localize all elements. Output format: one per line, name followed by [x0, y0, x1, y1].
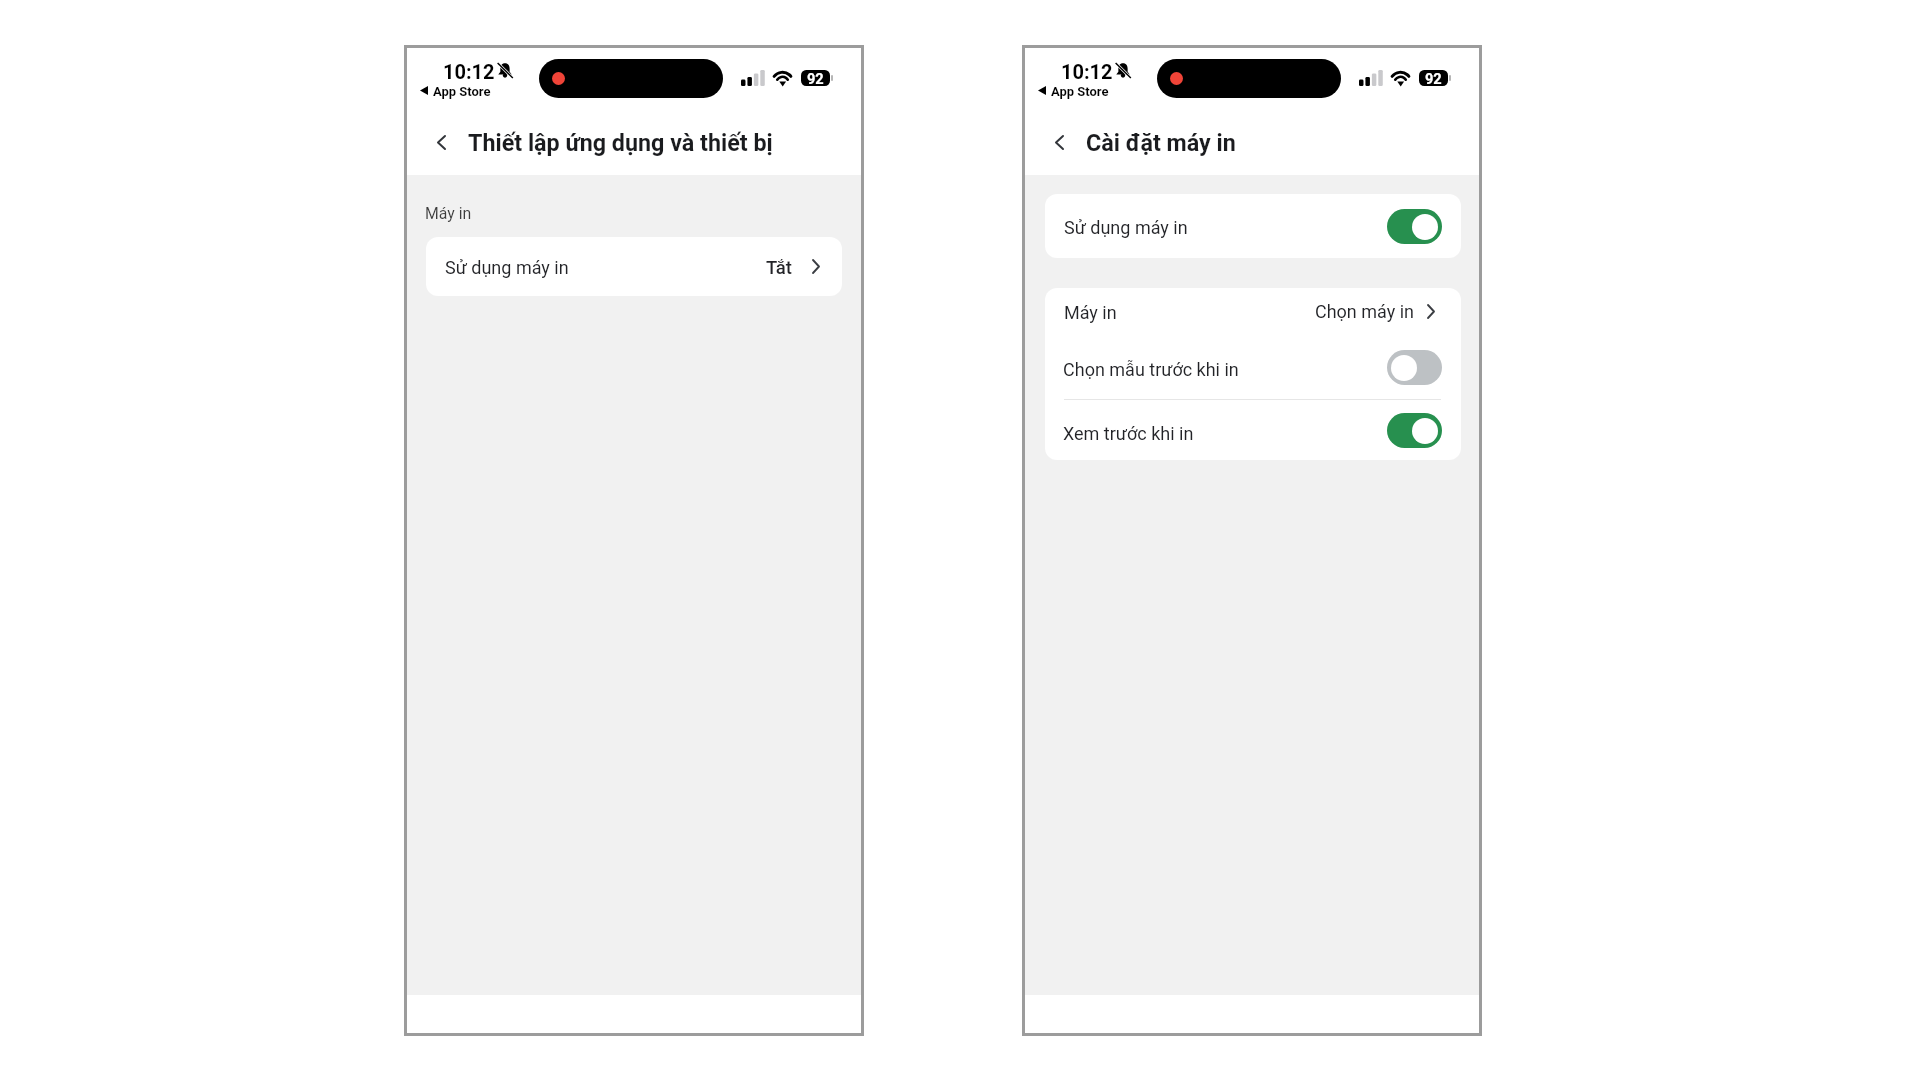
button[interactable]: Xem trước khi in: Bật [1387, 413, 1442, 448]
button[interactable]: Back [421, 122, 461, 162]
staticText: Máy in [425, 204, 472, 223]
button[interactable]: Máy in [1045, 288, 1461, 343]
staticText: 92 [807, 70, 824, 86]
staticText: Sử dụng máy in [1064, 217, 1188, 238]
staticText: Máy in [1064, 302, 1117, 323]
staticText: 10:12 [1061, 60, 1113, 83]
staticText: Chọn máy in [1314, 301, 1414, 322]
button[interactable]: Back [1039, 122, 1079, 162]
staticText: App Store [433, 84, 491, 99]
staticText: Xem trước khi in [1063, 423, 1194, 444]
button[interactable]: Chọn mẫu trước khi in: Tắt [1387, 350, 1442, 385]
button[interactable]: Sử dụng máy in [426, 237, 842, 296]
button[interactable]: Sử dụng máy in [1045, 194, 1461, 258]
staticText: Tắt [766, 257, 792, 279]
staticText: 10:12 [443, 60, 495, 83]
button[interactable]: Chọn mẫu trước khi in [1045, 343, 1461, 399]
staticText: Thiết lập ứng dụng và thiết bị [468, 129, 773, 156]
button[interactable]: Sử dụng máy in: Bật [1387, 209, 1442, 244]
staticText: App Store [1051, 84, 1109, 99]
staticText: 92 [1425, 70, 1442, 86]
button[interactable]: Xem trước khi in [1045, 400, 1461, 460]
staticText: Sử dụng máy in [445, 257, 569, 278]
staticText: Cài đặt máy in [1086, 129, 1236, 156]
staticText: Chọn mẫu trước khi in [1063, 359, 1239, 380]
